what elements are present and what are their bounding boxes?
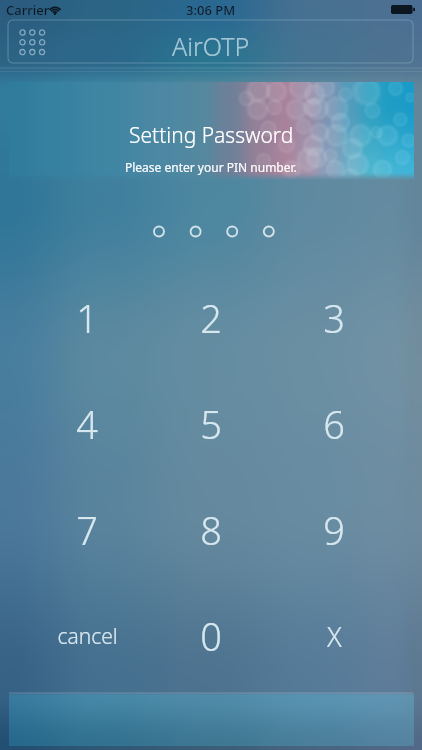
staticText: 1 [76, 292, 98, 344]
staticText: 8 [200, 504, 222, 556]
button[interactable]: 0 [156, 591, 266, 681]
button[interactable]: 8 [156, 485, 266, 575]
button[interactable]: 7 [32, 485, 142, 575]
button[interactable]: Menu [12, 25, 52, 59]
staticText: 2 [200, 292, 222, 344]
button[interactable]: X [279, 591, 389, 681]
button[interactable]: cancel [32, 591, 142, 681]
staticText: Carrier [6, 1, 50, 19]
button[interactable]: 3 [279, 273, 389, 363]
staticText: cancel [57, 622, 118, 651]
staticText: 5 [200, 398, 222, 450]
button[interactable]: 4 [32, 379, 142, 469]
button[interactable]: 6 [279, 379, 389, 469]
button[interactable]: 5 [156, 379, 266, 469]
staticText: Setting Password [129, 121, 294, 150]
staticText: 3 [323, 292, 345, 344]
staticText: 0 [200, 610, 222, 662]
button[interactable]: 2 [156, 273, 266, 363]
staticText: 7 [76, 504, 98, 556]
staticText: 3:06 PM [186, 1, 236, 19]
staticText: 6 [323, 398, 345, 450]
staticText: AirOTP [172, 29, 250, 63]
staticText: Please enter your PIN number. [125, 159, 297, 175]
staticText: 9 [323, 504, 345, 556]
staticText: 4 [76, 398, 98, 450]
staticText: X [327, 618, 342, 655]
button[interactable]: 9 [279, 485, 389, 575]
button[interactable]: 1 [32, 273, 142, 363]
